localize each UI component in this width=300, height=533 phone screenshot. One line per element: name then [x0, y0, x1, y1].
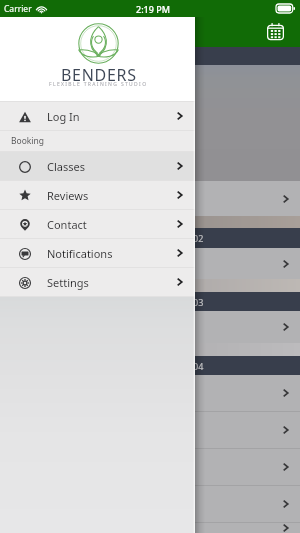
staticText: Classes [47, 159, 85, 174]
staticText: Notifications [47, 246, 113, 261]
staticText: Carrier [4, 3, 32, 15]
button[interactable]: Log In [0, 102, 195, 130]
button[interactable] [0, 375, 300, 411]
button[interactable] [0, 181, 300, 216]
button[interactable]: Calendar [261, 18, 287, 44]
staticText: BENDERS [61, 64, 137, 86]
staticText: FLEXIBLE TRAINING STUDIO [49, 81, 148, 88]
button[interactable] [0, 412, 300, 448]
button[interactable]: Reviews [0, 181, 195, 209]
staticText: 2:19 PM [136, 3, 170, 15]
staticText: 03 [193, 296, 204, 308]
staticText: Reviews [47, 188, 89, 203]
button[interactable] [0, 523, 300, 533]
staticText: Log In [47, 109, 80, 124]
button[interactable] [0, 449, 300, 485]
staticText: Booking [11, 135, 45, 147]
button[interactable] [0, 486, 300, 522]
button[interactable] [0, 248, 300, 279]
staticText: 04 [193, 360, 204, 372]
staticText: Contact [47, 217, 87, 232]
button[interactable]: Contact [0, 210, 195, 238]
staticText: 02 [193, 232, 204, 244]
button[interactable] [0, 311, 300, 343]
button[interactable]: Notifications [0, 239, 195, 267]
staticText: Settings [47, 275, 89, 290]
button[interactable]: Settings [0, 268, 195, 296]
button[interactable]: Classes [0, 152, 195, 180]
